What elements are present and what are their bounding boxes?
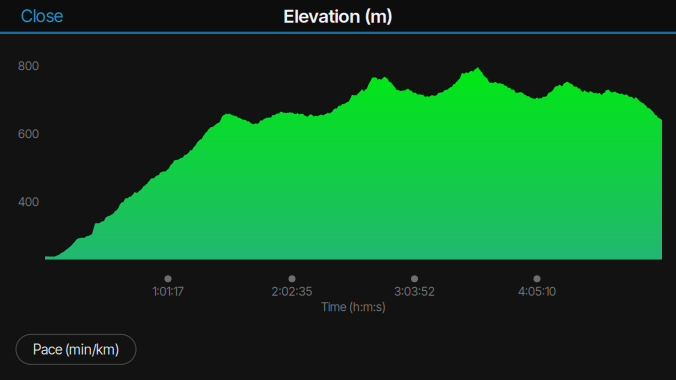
button[interactable]: Pace (min/km) bbox=[16, 334, 136, 364]
button[interactable]: Close bbox=[0, 0, 86, 32]
staticText: 4:05:10 bbox=[518, 284, 556, 298]
staticText: 2:02:35 bbox=[271, 284, 312, 298]
staticText: Pace (min/km) bbox=[33, 341, 119, 358]
staticText: 600 bbox=[18, 127, 39, 141]
staticText: 800 bbox=[18, 59, 39, 73]
staticText: 400 bbox=[18, 195, 39, 209]
staticText: 3:03:52 bbox=[394, 284, 435, 298]
staticText: Close bbox=[21, 5, 63, 26]
staticText: 1:01:17 bbox=[152, 284, 183, 298]
staticText: Time (h:m:s) bbox=[321, 300, 386, 314]
staticText: Elevation (m) bbox=[283, 5, 392, 27]
